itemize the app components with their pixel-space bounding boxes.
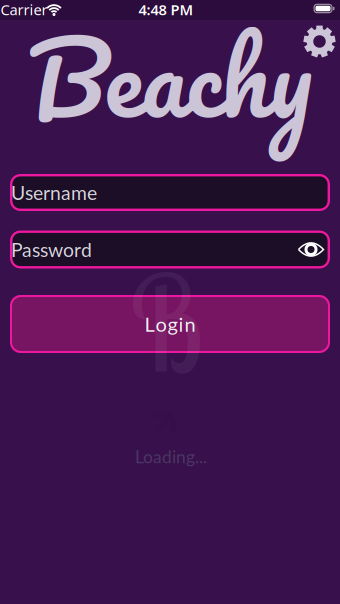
staticText: Beachy (28, 0, 312, 161)
button[interactable]: Show password (296, 234, 326, 264)
button[interactable]: Settings (301, 23, 337, 59)
staticText: Loading... (135, 446, 207, 467)
staticText: 4:48 PM (138, 0, 193, 19)
button[interactable]: Password (10, 230, 330, 268)
staticText: Login (144, 312, 195, 336)
staticText: Password (11, 238, 92, 261)
staticText: Username (11, 181, 97, 204)
button[interactable]: Login (10, 295, 330, 353)
staticText: B (121, 239, 210, 405)
button[interactable]: Username (10, 174, 330, 211)
staticText: Carrier (0, 0, 47, 19)
